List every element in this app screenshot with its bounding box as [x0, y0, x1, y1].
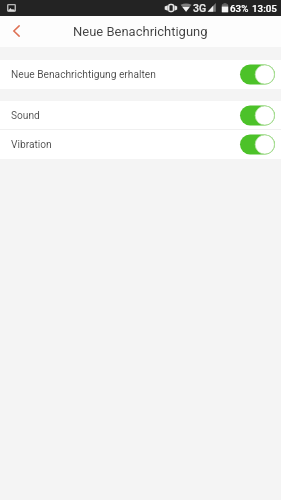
staticText: Neue Benachrichtigung erhalten [11, 69, 156, 81]
button[interactable]: Toggle notification [240, 134, 275, 155]
staticText: 13:05 [252, 3, 277, 14]
button[interactable]: Toggle notification [240, 64, 275, 85]
staticText: Vibration [11, 139, 52, 151]
button[interactable]: Back [0, 16, 32, 47]
button[interactable]: Neue Benachrichtigung erhalten [0, 60, 281, 89]
staticText: 3G [193, 2, 207, 14]
staticText: 63% [230, 3, 249, 14]
button[interactable]: Sound [0, 101, 281, 130]
staticText: Sound [11, 110, 40, 122]
staticText: Neue Benachrichtigung [73, 24, 208, 39]
button[interactable]: Vibration [0, 130, 281, 159]
button[interactable]: Toggle notification [240, 105, 275, 126]
